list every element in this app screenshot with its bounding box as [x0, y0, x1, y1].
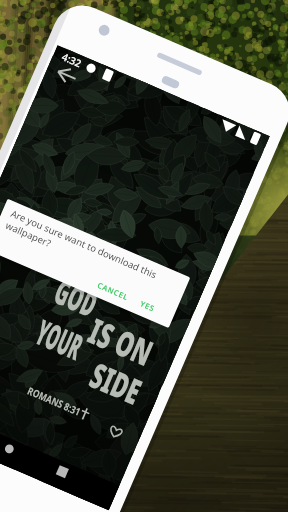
button[interactable] — [0, 0, 288, 512]
